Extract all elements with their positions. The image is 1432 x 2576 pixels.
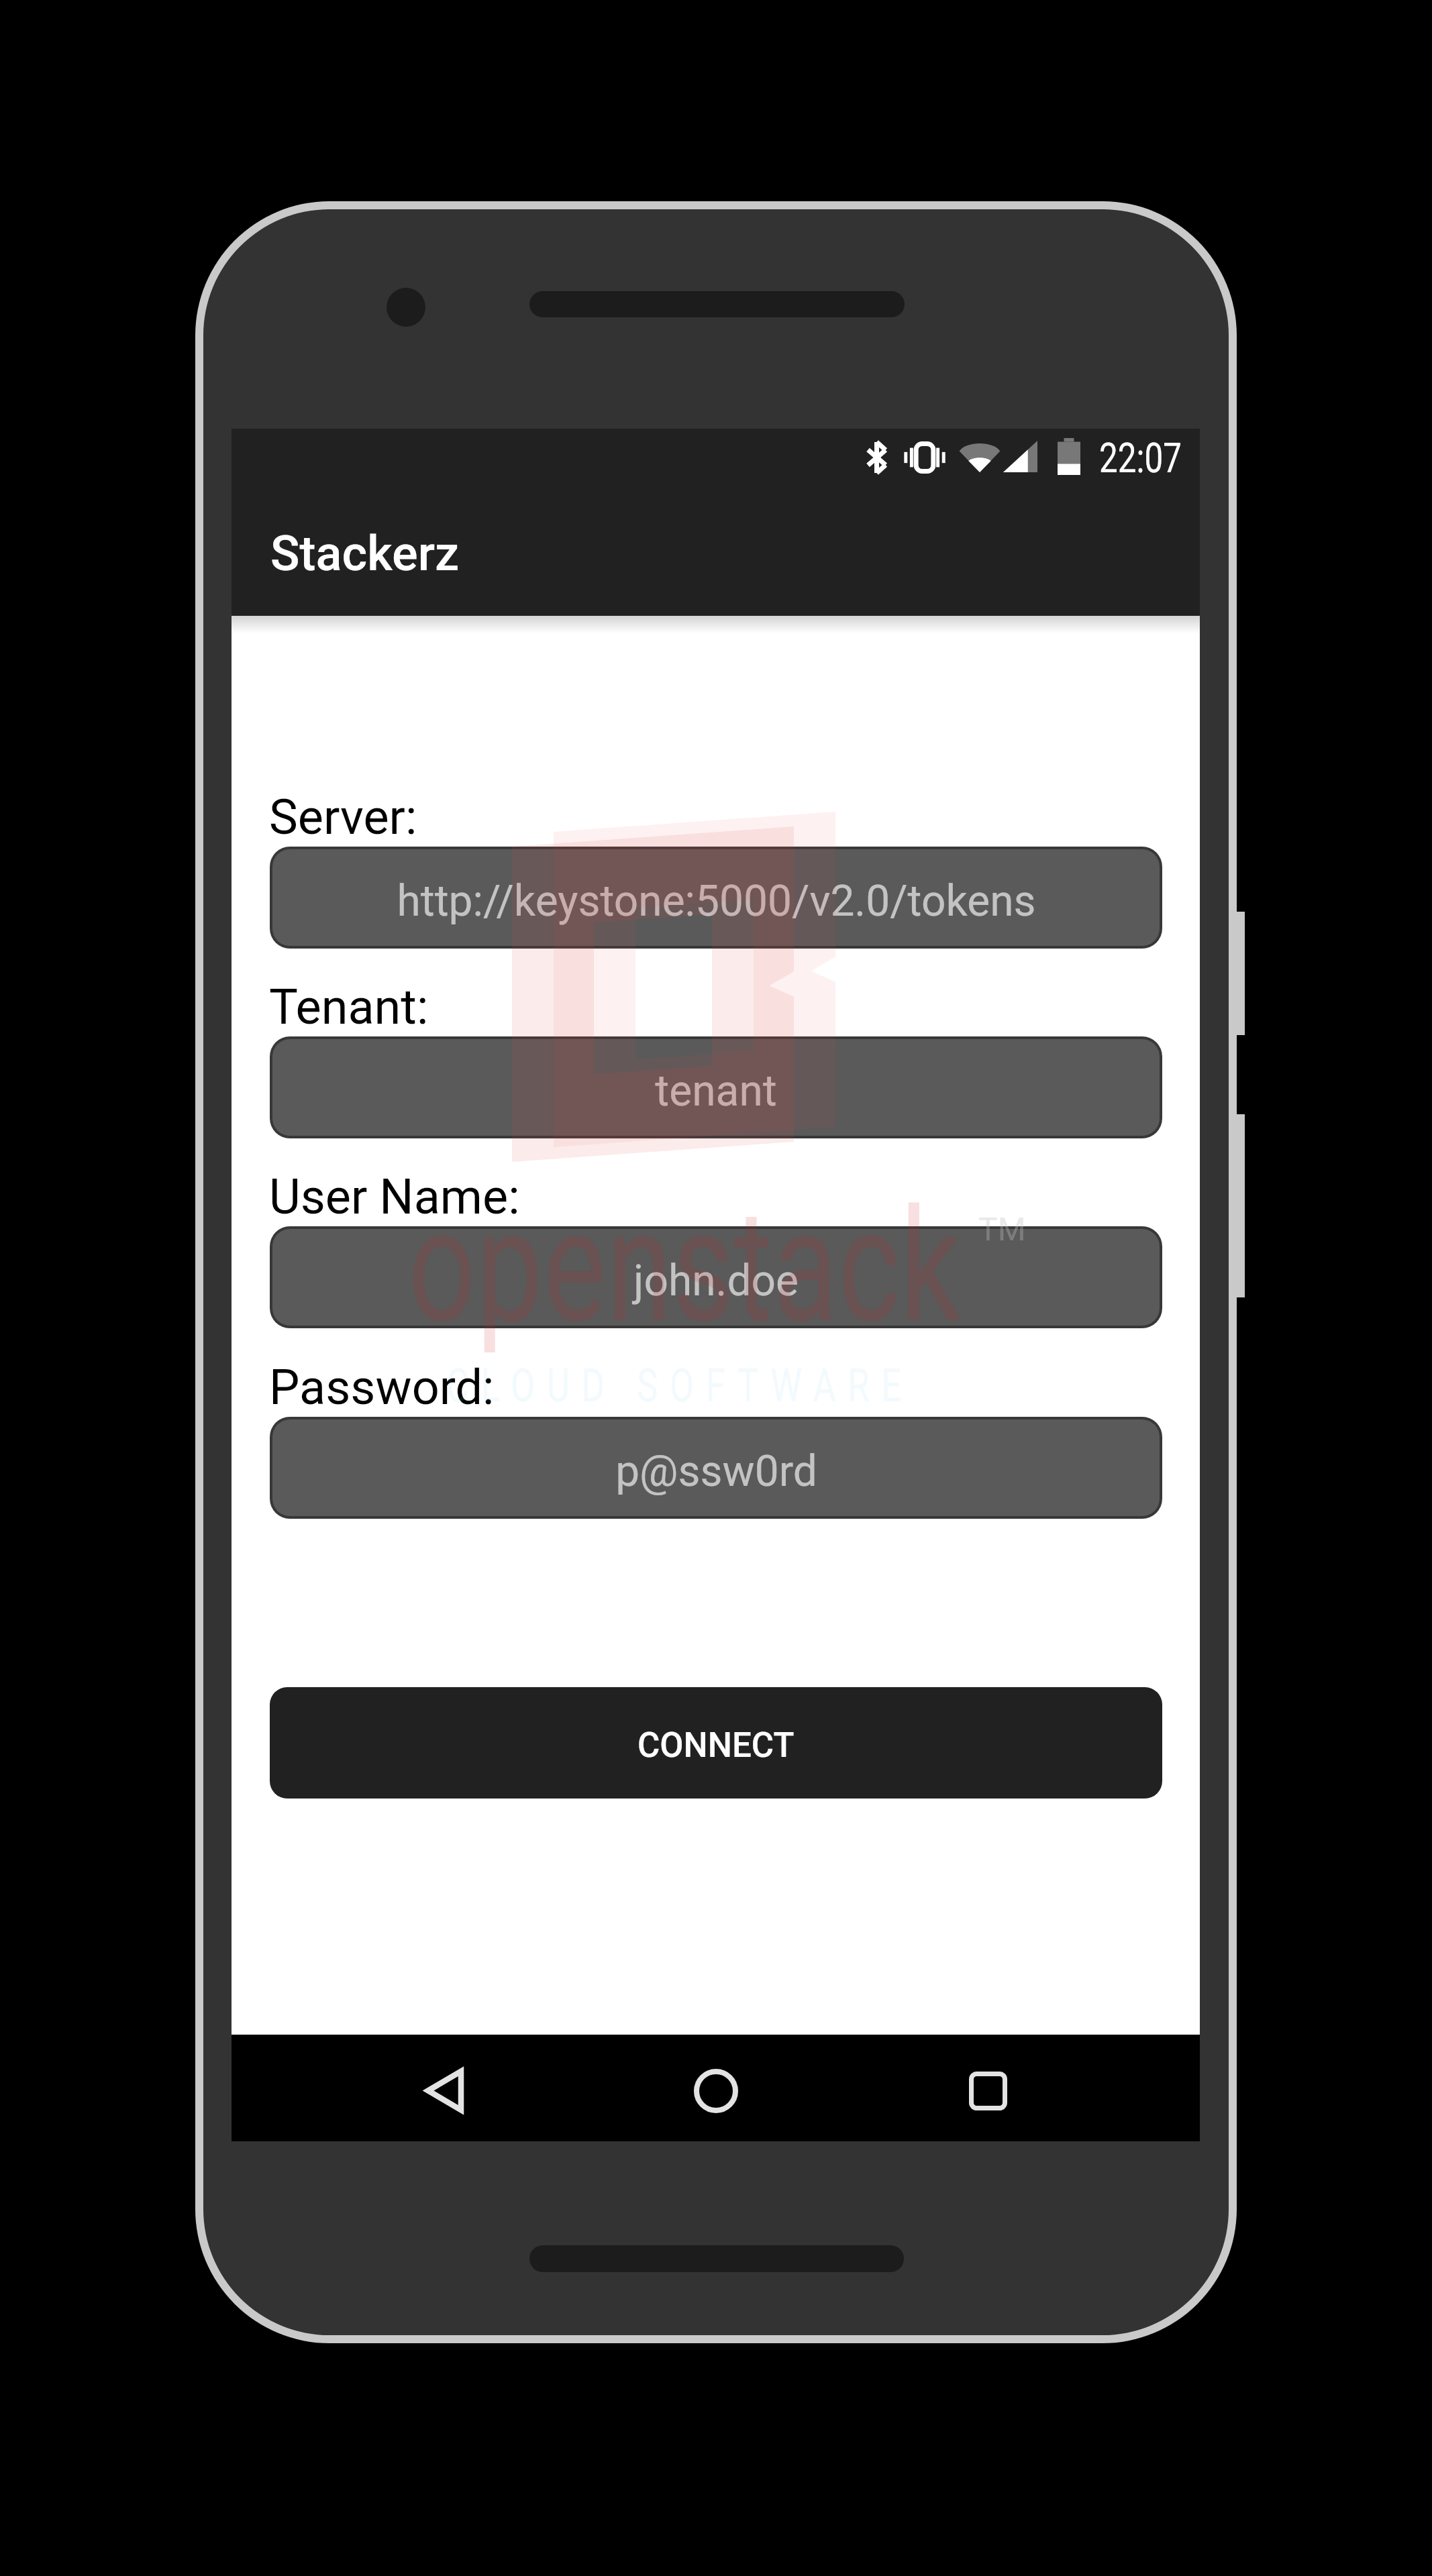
staticText: TM (978, 1210, 1026, 1248)
staticText: Password: (269, 1359, 495, 1415)
button[interactable]: p@ssw0rd (272, 1419, 1160, 1516)
button[interactable]: tenant (272, 1039, 1160, 1136)
staticText: Stackerz (270, 525, 460, 582)
staticText: openstack (408, 1175, 961, 1358)
staticText: p@ssw0rd (615, 1446, 817, 1497)
staticText: CONNECT (637, 1725, 795, 1766)
button[interactable]: Back (364, 2035, 525, 2141)
staticText: CLOUD SOFTWARE (446, 1358, 913, 1413)
button[interactable]: Recents (907, 2035, 1068, 2141)
staticText: User Name: (269, 1169, 520, 1225)
staticText: john.doe (633, 1256, 799, 1306)
staticText: 22:07 (1099, 434, 1182, 482)
button[interactable]: Home (635, 2035, 797, 2141)
staticText: tenant (655, 1066, 777, 1116)
staticText: http://keystone:5000/v2.0/tokens (397, 876, 1036, 926)
button[interactable]: CONNECT (270, 1687, 1162, 1799)
staticText: Server: (269, 789, 417, 845)
button[interactable]: http://keystone:5000/v2.0/tokens (272, 849, 1160, 946)
staticText: Tenant: (269, 979, 429, 1035)
button[interactable]: john.doe (272, 1229, 1160, 1326)
